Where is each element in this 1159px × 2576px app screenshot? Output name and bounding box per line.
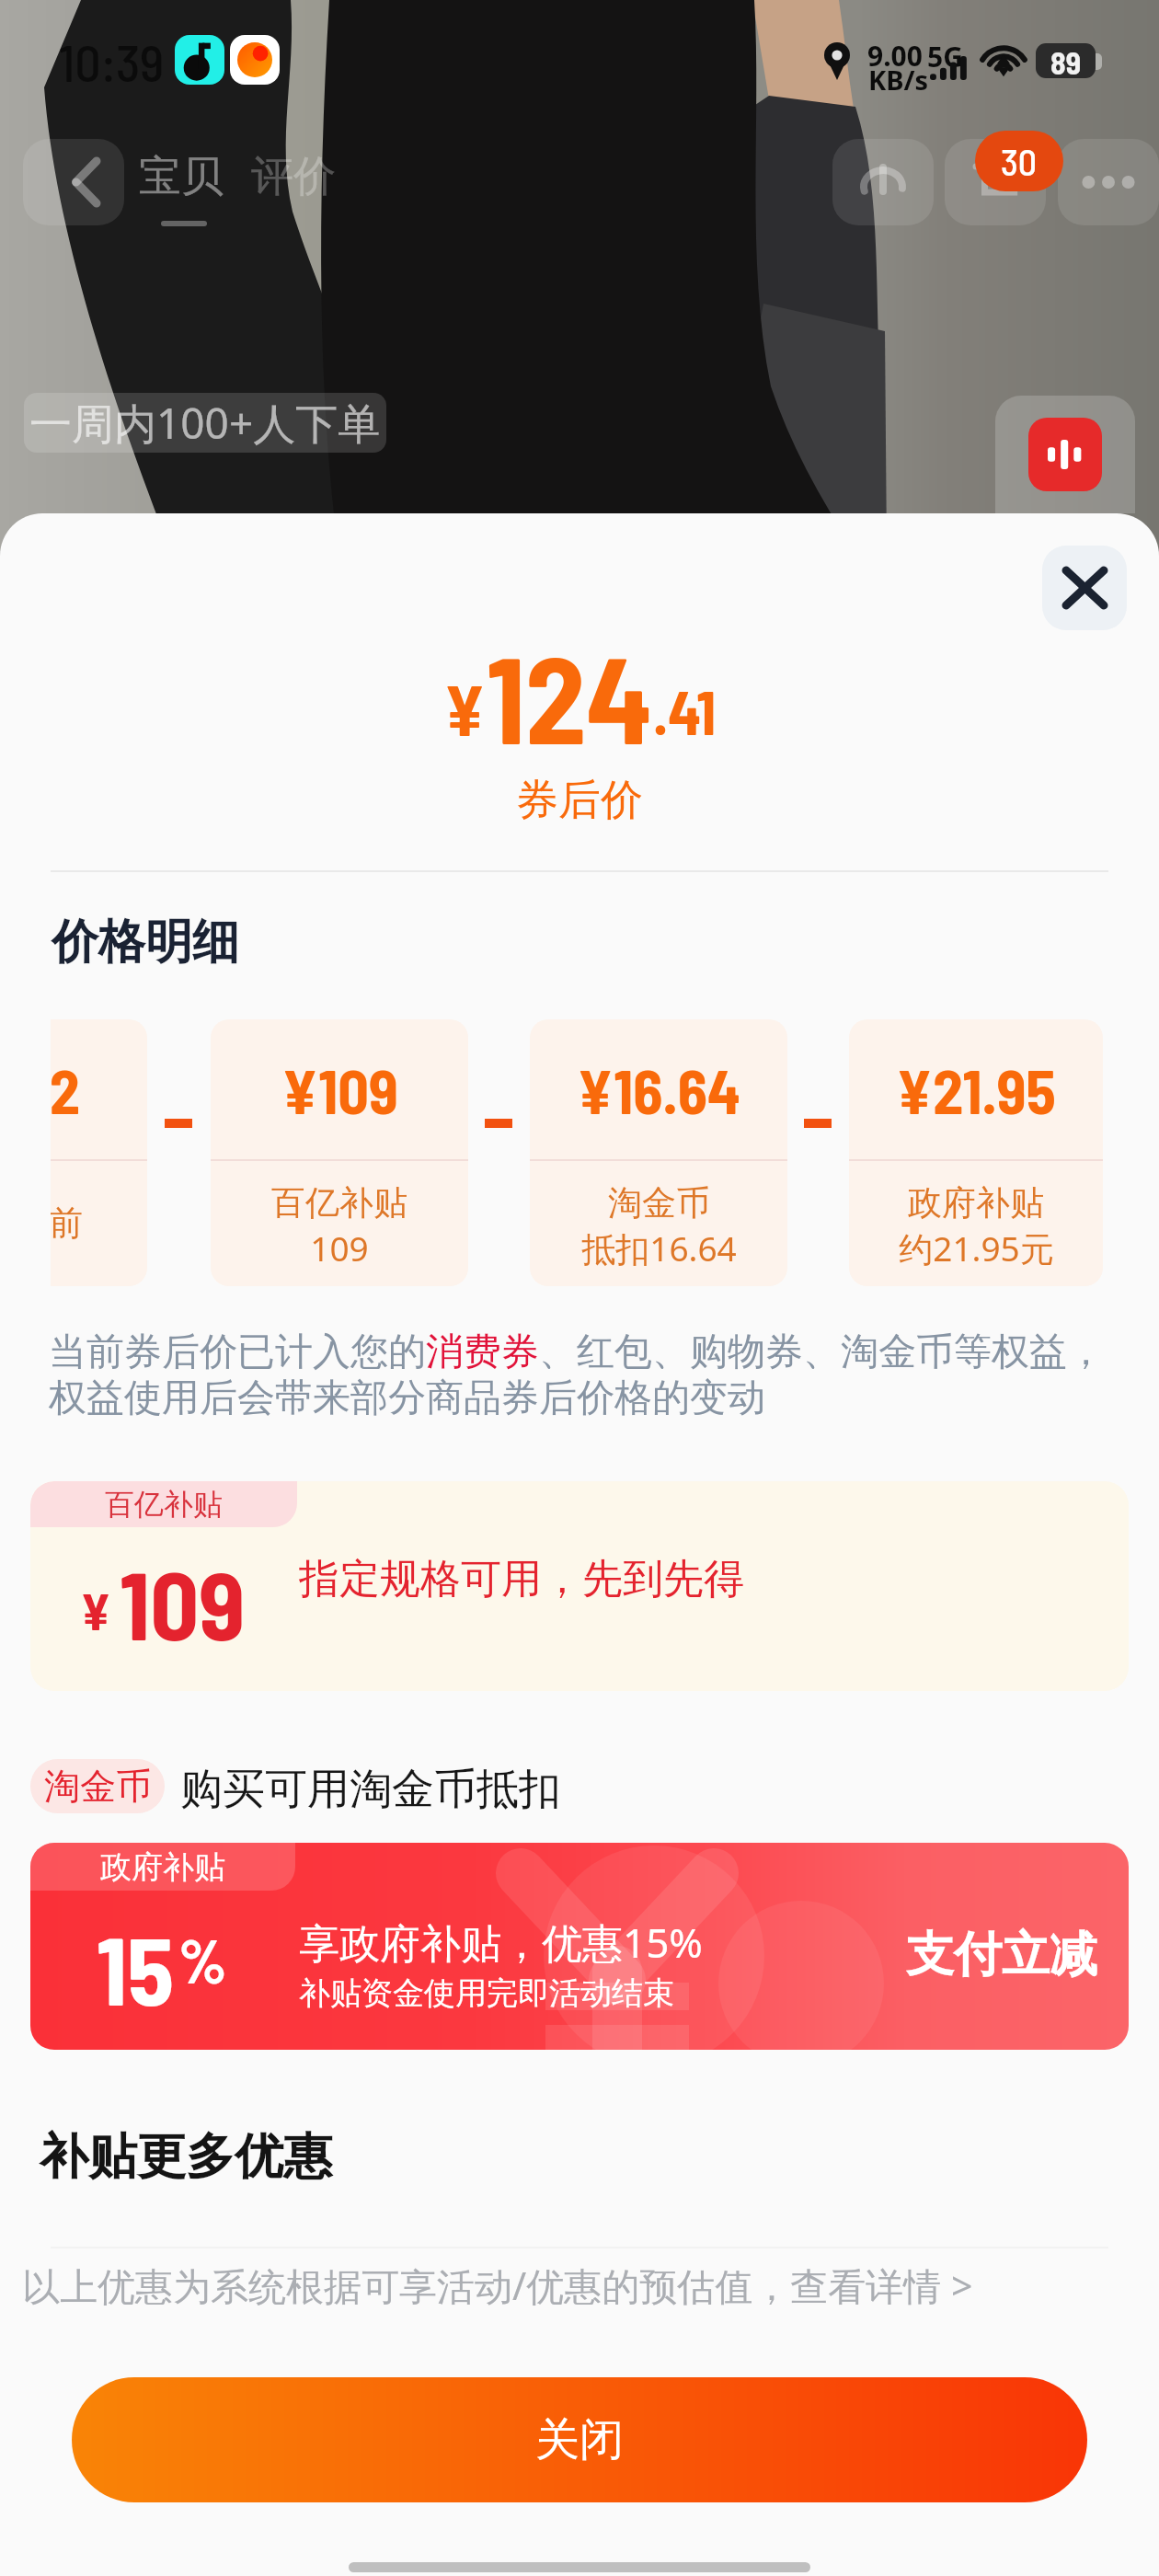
button[interactable]: 评价 bbox=[251, 150, 336, 203]
staticText: 政府补贴 bbox=[908, 1181, 1044, 1225]
staticText: ¥21.95 bbox=[896, 1053, 1056, 1126]
staticText: 109 bbox=[120, 1545, 246, 1660]
staticText: 一周内100+人下单 bbox=[29, 394, 381, 452]
button[interactable]: ¥109 bbox=[211, 1019, 468, 1286]
staticText: 宝贝 bbox=[139, 150, 224, 203]
staticText: 抵扣16.64 bbox=[581, 1225, 737, 1271]
staticText: 89 bbox=[1050, 43, 1082, 78]
staticText: 当前券后价已计入您的消费券、红包、购物券、淘金币等权益，权益使用后会带来部分商品… bbox=[49, 1328, 1107, 1422]
button[interactable]: 购物车 bbox=[945, 139, 1046, 225]
staticText: 2 bbox=[51, 1053, 80, 1126]
staticText: 5G bbox=[927, 38, 963, 75]
button[interactable]: 宝贝 bbox=[139, 150, 224, 203]
button[interactable]: 返回 bbox=[23, 139, 124, 225]
button[interactable]: 关闭 bbox=[1042, 546, 1127, 630]
staticText: 券后价 bbox=[0, 774, 1159, 827]
staticText: 9.00 bbox=[867, 37, 923, 75]
staticText: % bbox=[178, 1923, 227, 1995]
staticText: ¥109 bbox=[281, 1053, 398, 1126]
button[interactable]: 更多 bbox=[1058, 139, 1159, 225]
staticText: 15 bbox=[97, 1910, 174, 2025]
staticText: 淘金币 bbox=[608, 1181, 710, 1225]
staticText: 109 bbox=[310, 1225, 369, 1271]
button[interactable]: ¥16.64 bbox=[530, 1019, 787, 1286]
staticText: 30 bbox=[1001, 139, 1038, 183]
button[interactable]: 政府补贴 bbox=[30, 1843, 1129, 2050]
staticText: 10:39 bbox=[59, 30, 165, 92]
button[interactable]: 直播 bbox=[1028, 418, 1102, 491]
staticText: 价格明细 bbox=[52, 913, 239, 972]
staticText: 评价 bbox=[251, 150, 336, 203]
staticText: ¥ bbox=[80, 1579, 112, 1640]
staticText: 124 bbox=[487, 623, 653, 768]
button[interactable]: 2 bbox=[51, 1019, 147, 1286]
staticText: .41 bbox=[653, 674, 717, 747]
staticText: 补贴更多优惠 bbox=[40, 2126, 332, 2188]
staticText: 购买可用淘金币抵扣 bbox=[180, 1763, 561, 1816]
staticText: 淘金币 bbox=[44, 1764, 152, 1809]
button[interactable]: ¥21.95 bbox=[849, 1019, 1103, 1286]
button[interactable]: 分享 bbox=[832, 139, 934, 225]
button[interactable]: 百亿补贴 bbox=[30, 1481, 1129, 1691]
staticText: 支付立减 bbox=[906, 1925, 1097, 1985]
staticText: 政府补贴 bbox=[100, 1847, 225, 1887]
staticText: 约21.95元 bbox=[899, 1225, 1054, 1271]
staticText: KB/s bbox=[868, 62, 929, 98]
staticText: 享政府补贴，优惠15% bbox=[299, 1915, 703, 1970]
staticText: 百亿补贴 bbox=[271, 1181, 407, 1225]
staticText: 关闭 bbox=[535, 2412, 624, 2467]
staticText: 百亿补贴 bbox=[105, 1486, 223, 1523]
staticText: 前 bbox=[51, 1202, 83, 1245]
staticText: ¥ bbox=[443, 666, 487, 750]
staticText: 以上优惠为系统根据可享活动/优惠的预估值，查看详情 > bbox=[22, 2260, 973, 2311]
button[interactable]: 关闭 bbox=[72, 2377, 1087, 2502]
staticText: 指定规格可用，先到先得 bbox=[299, 1554, 744, 1604]
staticText: 补贴资金使用完即活动结束 bbox=[299, 1973, 674, 2013]
staticText: ¥16.64 bbox=[577, 1053, 740, 1126]
